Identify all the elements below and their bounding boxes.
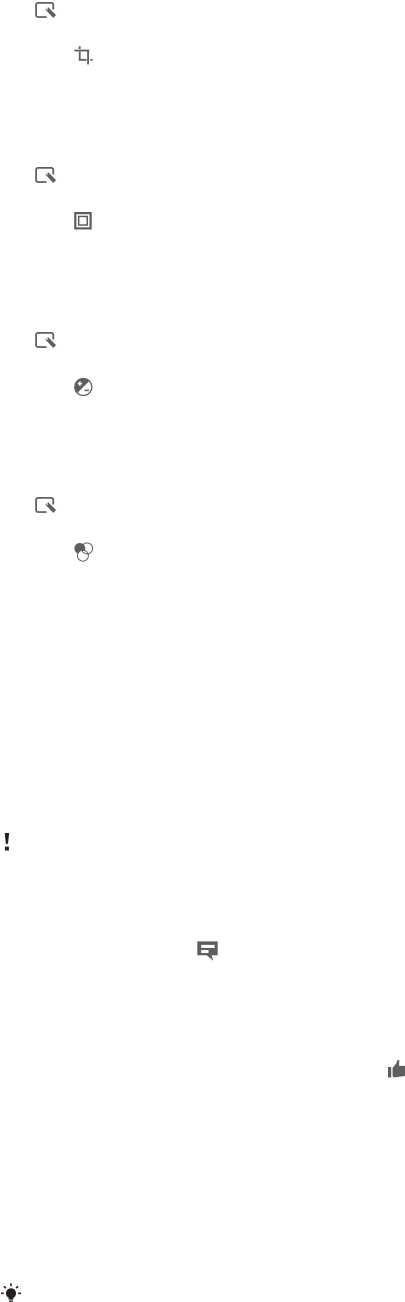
button[interactable] [0,330,405,495]
button[interactable]: Like [388,1059,405,1078]
button[interactable] [0,165,405,330]
button[interactable]: Comments [197,941,218,961]
button[interactable] [0,0,405,165]
button[interactable] [0,495,405,660]
button[interactable]: Tips [1,1283,21,1302]
